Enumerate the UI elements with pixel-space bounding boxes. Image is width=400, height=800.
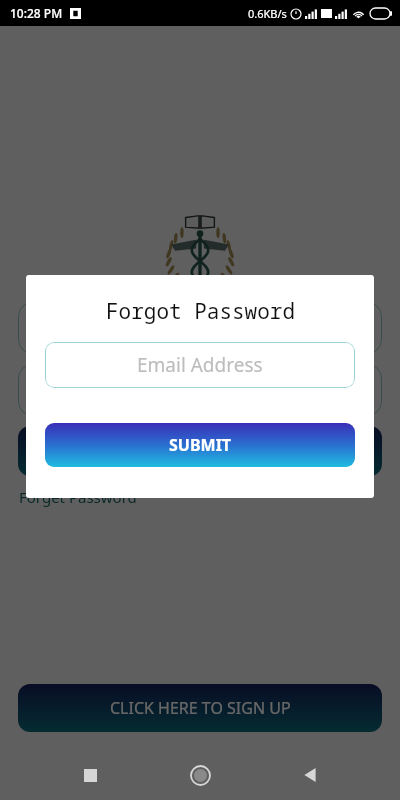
staticText: CLICK HERE TO SIGN UP [110,697,291,719]
button[interactable]: LOGIN [18,426,382,476]
staticText: Password [34,379,107,401]
staticText: Username [34,317,112,339]
staticText: SUBMIT [169,434,232,456]
button[interactable]: Back [290,755,330,795]
button[interactable]: CLICK HERE TO SIGN UP [18,684,382,732]
button[interactable]: Recent apps [70,755,110,795]
button[interactable]: Username [18,302,382,354]
button[interactable]: Email Address [45,342,355,388]
button[interactable]: Password [18,364,382,416]
staticText: Email Address [137,352,263,378]
button[interactable]: Forget Password [19,487,137,507]
button[interactable]: Home [180,755,220,795]
button[interactable]: SUBMIT [45,423,355,467]
staticText: 10:28 PM [10,5,63,21]
staticText: Forgot Password [106,297,295,326]
staticText: Forget Password [19,487,137,507]
staticText: LOGIN [174,440,227,463]
staticText: 0.6KB/s [248,6,287,21]
